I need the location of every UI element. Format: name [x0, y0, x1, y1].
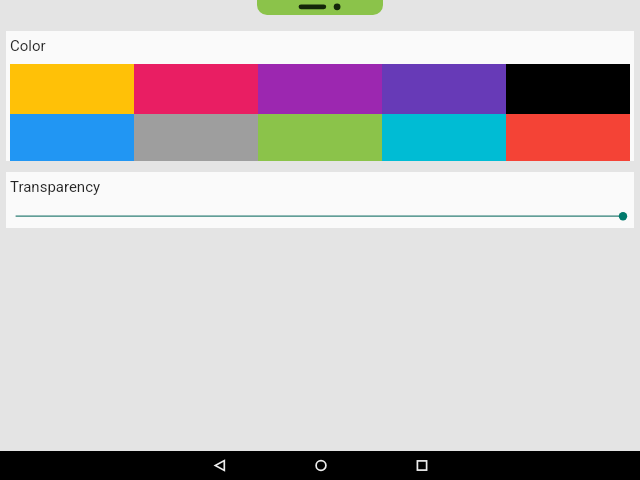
button[interactable]: Brush preview [257, 0, 383, 15]
button[interactable]: Back [204, 451, 236, 480]
staticText: Transparency [10, 178, 101, 196]
button[interactable]: Transparency slider [6, 205, 634, 228]
button[interactable]: Home [305, 451, 337, 480]
button[interactable]: Recent apps [406, 451, 438, 480]
staticText: Color [10, 37, 46, 55]
